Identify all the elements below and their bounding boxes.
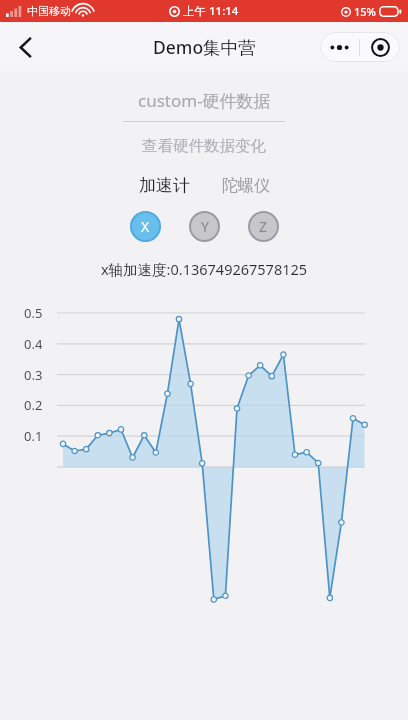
button[interactable]: Close mini program bbox=[360, 32, 400, 62]
staticText: 0.5 bbox=[24, 304, 43, 322]
button[interactable]: 陀螺仪 bbox=[216, 173, 276, 199]
staticText: custom-硬件数据 bbox=[138, 89, 271, 112]
button[interactable]: More options bbox=[320, 32, 359, 62]
staticText: x轴加速度:0.136749267578125 bbox=[0, 259, 408, 279]
staticText: 上午 11:14 bbox=[183, 3, 239, 19]
button[interactable]: Back bbox=[4, 26, 46, 68]
staticText: 中国移动 bbox=[27, 4, 71, 18]
staticText: 0.2 bbox=[24, 396, 43, 414]
staticText: X bbox=[141, 217, 150, 236]
staticText: Demo集中营 bbox=[153, 35, 256, 59]
button[interactable]: X bbox=[130, 211, 161, 242]
button[interactable]: Z bbox=[248, 211, 279, 242]
staticText: Z bbox=[259, 217, 268, 236]
button[interactable]: 加速计 bbox=[133, 172, 196, 199]
staticText: 15% bbox=[354, 4, 376, 19]
staticText: 查看硬件数据变化 bbox=[142, 136, 266, 156]
staticText: 0.3 bbox=[24, 366, 43, 384]
staticText: Y bbox=[201, 217, 209, 236]
staticText: 加速计 bbox=[139, 175, 190, 196]
staticText: 0.1 bbox=[24, 427, 43, 445]
staticText: 陀螺仪 bbox=[222, 176, 270, 196]
staticText: 0.4 bbox=[24, 335, 43, 353]
button[interactable]: Y bbox=[189, 211, 220, 242]
